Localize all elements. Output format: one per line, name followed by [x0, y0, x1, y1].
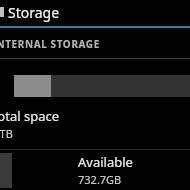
staticText: Available [78, 153, 133, 171]
staticText: Total space [0, 107, 59, 125]
button[interactable]: Available [0, 150, 190, 190]
staticText: 1.1TB [0, 126, 13, 141]
staticText: Storage [8, 3, 60, 22]
staticText: INTERNAL STORAGE [0, 37, 100, 51]
button[interactable]: Storage, navigate up [0, 0, 190, 26]
staticText: 732.7GB [78, 172, 122, 187]
